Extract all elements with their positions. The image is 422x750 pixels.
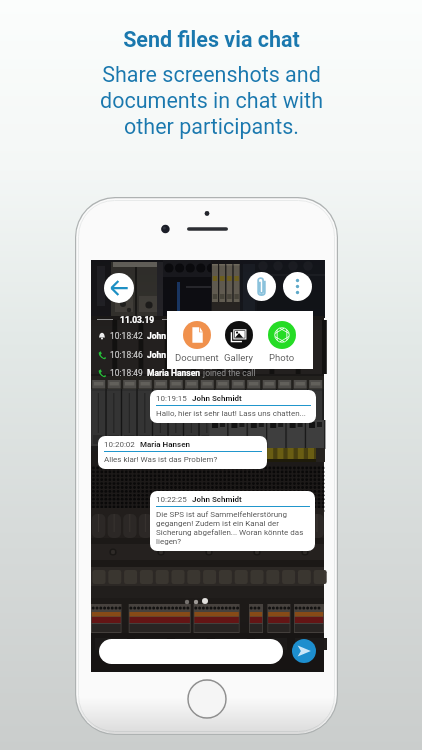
button[interactable]: 10:20:02	[98, 436, 267, 469]
staticText: Photo	[269, 352, 295, 363]
staticText: 10:19:15	[156, 394, 187, 403]
button[interactable]: 10:19:15	[150, 390, 316, 423]
button[interactable]: Gallery	[215, 311, 263, 369]
staticText: Maria Hansen	[147, 368, 201, 378]
button[interactable]: Attach file	[247, 272, 276, 301]
button[interactable]: Send	[292, 639, 316, 663]
staticText: Send files via chat	[123, 27, 300, 52]
staticText: Maria Hansen	[140, 440, 190, 449]
button[interactable]: Photo	[258, 311, 306, 369]
staticText: 10:18:42	[110, 331, 143, 341]
button[interactable]: 10:18:42	[98, 330, 174, 342]
staticText: John S	[147, 350, 174, 360]
staticText: Gallery	[224, 352, 254, 363]
staticText: John Schmidt	[192, 495, 242, 504]
button[interactable]: More options	[283, 272, 312, 301]
button[interactable]: 10:18:46	[98, 349, 174, 361]
staticText: John Schmidt	[192, 394, 242, 403]
staticText: Hallo, hier ist sehr laut! Lass uns chat…	[156, 409, 306, 418]
staticText: 10:18:49	[110, 368, 143, 378]
staticText: Alles klar! Was ist das Problem?	[104, 455, 218, 464]
staticText: Die SPS ist auf Sammelfehlerstörung gega…	[156, 510, 310, 546]
staticText: 11.03.19	[120, 315, 155, 325]
button[interactable]: 10:22:25	[150, 491, 315, 551]
staticText: 10:18:46	[110, 350, 143, 360]
staticText: Share screenshots and documents in chat …	[100, 62, 323, 139]
staticText: joined the call	[201, 368, 256, 378]
staticText: 10:22:25	[156, 495, 187, 504]
staticText: 10:20:02	[104, 440, 135, 449]
button[interactable]: Back	[104, 273, 134, 303]
button[interactable]: 10:18:49	[98, 367, 256, 379]
button[interactable]: Document	[173, 311, 221, 369]
staticText: John S	[147, 331, 174, 341]
button[interactable]: Message input	[99, 639, 283, 664]
staticText: Document	[175, 352, 219, 363]
